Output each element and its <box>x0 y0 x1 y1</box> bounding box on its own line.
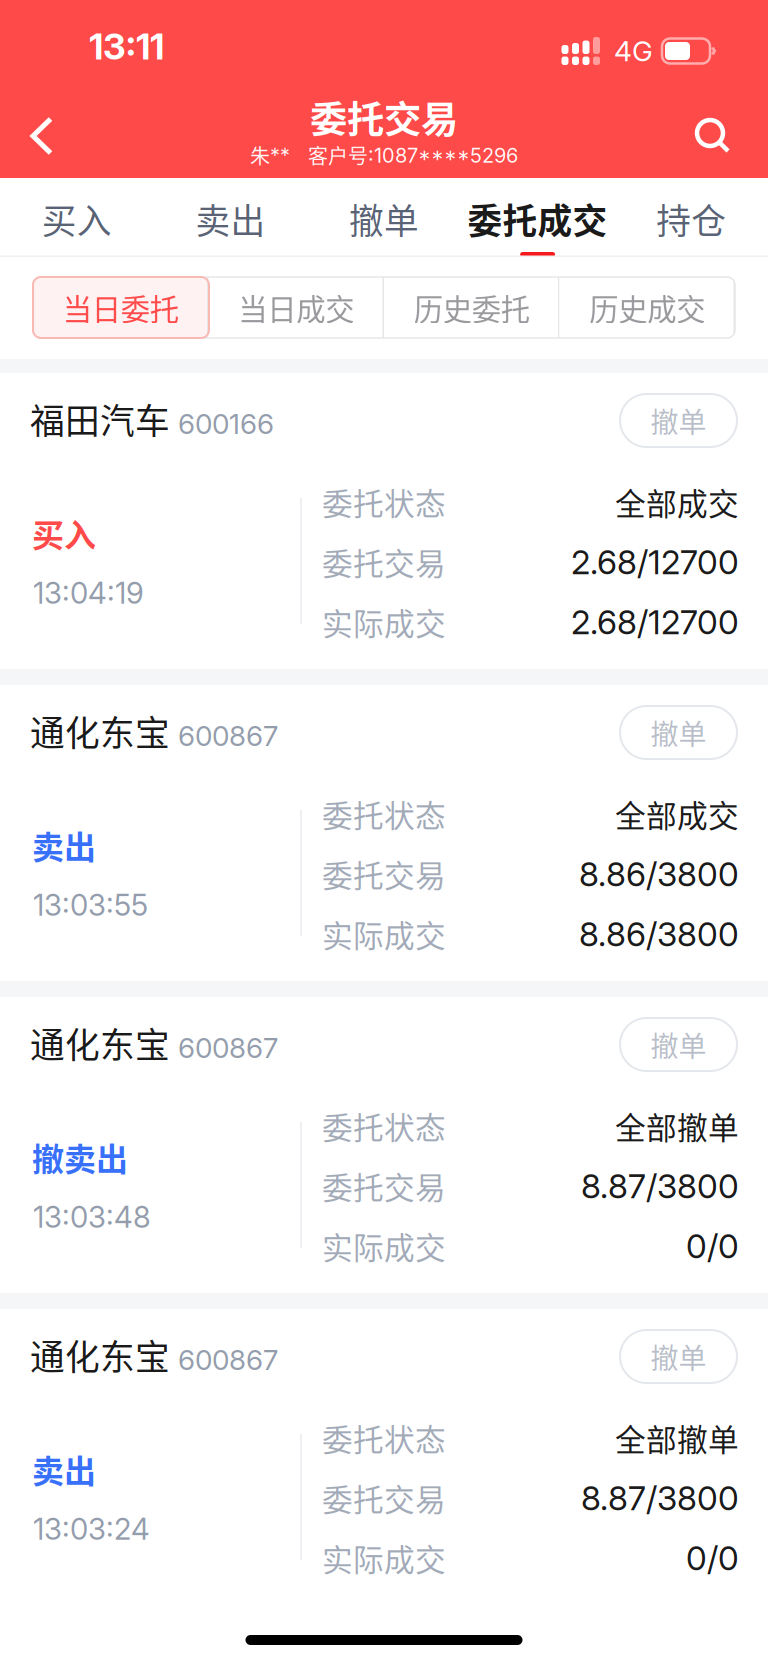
staticText: 卖出 <box>32 1446 96 1492</box>
staticText: 历史委托 <box>414 286 530 329</box>
staticText: 买入 <box>42 194 112 244</box>
staticText: 通化东宝 <box>30 706 170 756</box>
staticText: 600867 <box>178 1031 278 1065</box>
staticText: 委托交易 <box>322 540 446 584</box>
button[interactable]: 历史委托 <box>384 277 559 338</box>
staticText: 撤单 <box>650 1024 706 1065</box>
staticText: 4G <box>614 34 653 68</box>
button[interactable]: 买入 <box>0 178 154 257</box>
staticText: 持仓 <box>656 194 726 244</box>
staticText: 全部成交 <box>615 480 739 524</box>
button[interactable]: 卖出 <box>154 178 307 257</box>
staticText: 卖出 <box>195 194 265 244</box>
staticText: 委托成交 <box>468 194 608 244</box>
staticText: 委托交易 <box>310 90 458 144</box>
staticText: 撤单 <box>650 1336 706 1377</box>
staticText: 0/0 <box>686 1226 739 1266</box>
staticText: 当日委托 <box>63 286 179 329</box>
button[interactable]: Back <box>0 100 84 172</box>
staticText: 13:04:19 <box>33 575 144 611</box>
staticText: 2.68/12700 <box>571 602 739 642</box>
staticText: 600166 <box>178 407 274 441</box>
staticText: 0/0 <box>686 1538 739 1578</box>
button[interactable]: Search <box>671 100 755 172</box>
staticText: 撤单 <box>650 400 706 441</box>
staticText: 买入 <box>32 510 96 556</box>
staticText: 8.86/3800 <box>579 854 739 894</box>
staticText: 委托交易 <box>322 1476 446 1520</box>
staticText: 通化东宝 <box>30 1330 170 1380</box>
button[interactable]: 撤单 <box>620 706 737 759</box>
staticText: 600867 <box>178 719 278 753</box>
staticText: 8.87/3800 <box>581 1166 739 1206</box>
staticText: 福田汽车 <box>30 394 170 444</box>
staticText: 委托交易 <box>322 852 446 896</box>
staticText: 8.87/3800 <box>581 1478 739 1518</box>
staticText: 实际成交 <box>322 912 446 956</box>
staticText: 委托交易 <box>322 1164 446 1208</box>
staticText: 卖出 <box>32 822 96 868</box>
staticText: 委托状态 <box>322 792 446 836</box>
button[interactable]: 撤单 <box>620 1018 737 1071</box>
staticText: 实际成交 <box>322 600 446 644</box>
staticText: 实际成交 <box>322 1224 446 1268</box>
staticText: 历史成交 <box>589 286 705 329</box>
staticText: 撤单 <box>349 194 419 244</box>
staticText: 委托状态 <box>322 1104 446 1148</box>
staticText: 13:03:55 <box>33 887 148 923</box>
staticText: 13:03:24 <box>33 1511 150 1547</box>
button[interactable]: 撤单 <box>620 1330 737 1383</box>
staticText: 委托状态 <box>322 480 446 524</box>
staticText: 实际成交 <box>322 1536 446 1580</box>
button[interactable]: 撤单 <box>620 394 737 447</box>
button[interactable]: 撤单 <box>307 178 461 257</box>
staticText: 600867 <box>178 1343 278 1377</box>
staticText: 当日成交 <box>238 286 354 329</box>
staticText: 撤单 <box>650 712 706 753</box>
staticText: 委托状态 <box>322 1416 446 1460</box>
staticText: 全部成交 <box>615 792 739 836</box>
button[interactable]: 当日成交 <box>208 277 384 338</box>
staticText: 13:03:48 <box>33 1199 151 1235</box>
button[interactable]: 当日委托 <box>33 277 208 338</box>
staticText: 2.68/12700 <box>571 542 739 582</box>
button[interactable]: 持仓 <box>614 178 768 257</box>
staticText: 8.86/3800 <box>579 914 739 954</box>
button[interactable]: 历史成交 <box>559 277 735 338</box>
staticText: 全部撤单 <box>615 1416 739 1460</box>
staticText: 撤卖出 <box>32 1134 128 1180</box>
staticText: 通化东宝 <box>30 1018 170 1068</box>
staticText: 13:11 <box>89 25 164 68</box>
staticText: 朱** 客户号:1087****5296 <box>250 140 518 169</box>
button[interactable]: 委托成交 <box>461 178 614 257</box>
staticText: 全部撤单 <box>615 1104 739 1148</box>
